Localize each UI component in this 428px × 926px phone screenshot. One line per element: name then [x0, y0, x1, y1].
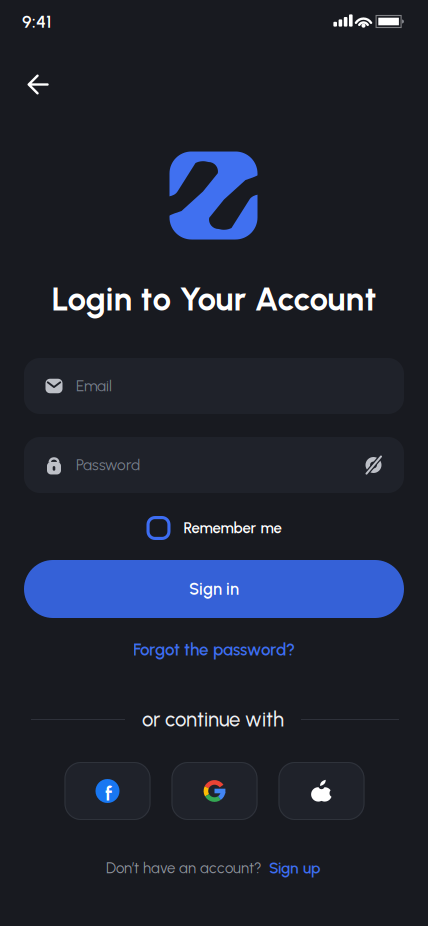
- button[interactable]: Password: [24, 437, 404, 493]
- staticText: Don’t have an account?: [106, 859, 261, 877]
- staticText: Login to Your Account: [51, 279, 376, 319]
- staticText: Email: [76, 377, 112, 395]
- staticText: f: [105, 782, 112, 806]
- button[interactable]: Sign in: [24, 560, 404, 618]
- staticText: 9:41: [22, 11, 51, 32]
- button[interactable]: Email: [24, 358, 404, 414]
- staticText: Sign in: [189, 579, 239, 599]
- staticText: or continue with: [142, 707, 284, 732]
- staticText: Remember me: [183, 519, 281, 537]
- button[interactable]: [278, 762, 364, 820]
- staticText: Password: [76, 456, 140, 474]
- staticText: Forgot the password?: [133, 639, 295, 660]
- staticText: Sign up: [269, 859, 320, 877]
- button[interactable]: [171, 762, 257, 820]
- button[interactable]: [362, 452, 384, 478]
- button[interactable]: [23, 69, 53, 99]
- button[interactable]: f: [64, 762, 150, 820]
- button[interactable]: Remember me: [146, 516, 281, 540]
- button[interactable]: Forgot the password?: [133, 639, 295, 660]
- button[interactable]: Sign up: [269, 859, 320, 877]
